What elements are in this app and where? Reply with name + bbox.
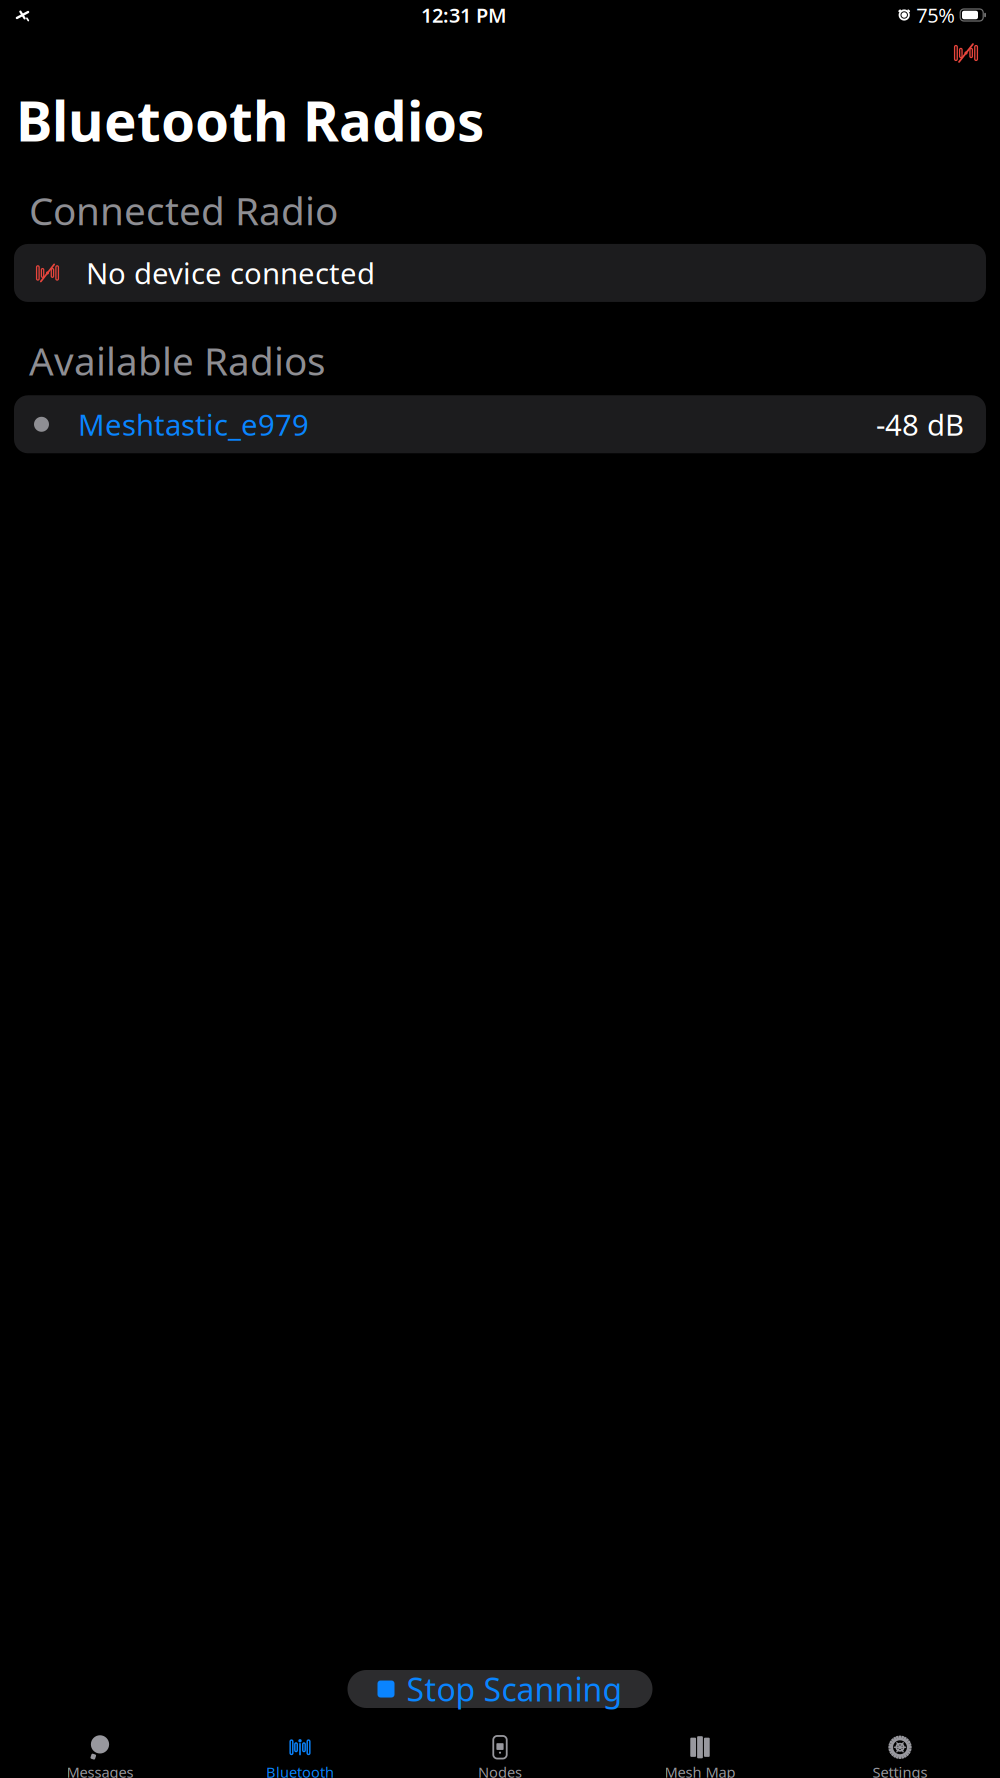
staticText: -48 dB	[876, 405, 964, 444]
button[interactable]: Bluetooth	[200, 1728, 400, 1778]
staticText: Settings	[872, 1762, 927, 1778]
staticText: 12:31 PM	[421, 2, 507, 28]
button[interactable]: Radio disconnected	[947, 34, 985, 72]
button[interactable]: Messages	[0, 1728, 200, 1778]
staticText: Bluetooth Radios	[16, 84, 484, 157]
staticText: Available Radios	[29, 335, 326, 386]
staticText: Meshtastic_e979	[78, 405, 309, 444]
button[interactable]: Meshtastic_e979	[14, 395, 986, 453]
button[interactable]: Stop Scanning	[347, 1670, 652, 1708]
staticText: No device connected	[86, 253, 375, 292]
staticText: Nodes	[478, 1762, 522, 1778]
staticText: 75%	[916, 2, 955, 28]
staticText: Stop Scanning	[406, 1668, 622, 1710]
button[interactable]: Nodes	[400, 1728, 600, 1778]
staticText: Messages	[66, 1762, 133, 1778]
button[interactable]: Settings	[800, 1728, 1000, 1778]
staticText: Mesh Map	[664, 1762, 735, 1778]
staticText: Connected Radio	[29, 185, 338, 236]
button[interactable]: Mesh Map	[600, 1728, 800, 1778]
staticText: Bluetooth	[266, 1762, 334, 1778]
